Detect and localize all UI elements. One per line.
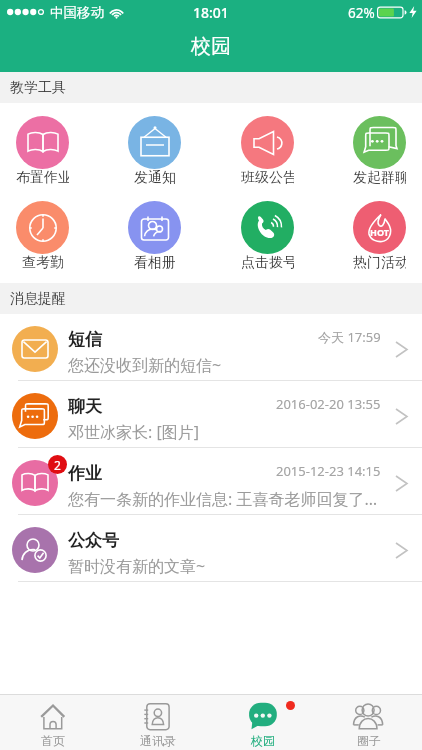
staticText: 您还没收到新的短信~ — [68, 354, 380, 376]
button[interactable]: 圈子 — [316, 695, 422, 750]
staticText: 邓世冰家长: [图片] — [68, 421, 380, 443]
staticText: 圈子 — [357, 733, 381, 748]
staticText: 作业 — [68, 463, 102, 484]
staticText: 看相册 — [134, 254, 176, 272]
staticText: 热门活动 — [353, 254, 406, 272]
button[interactable]: 点击拨号 — [241, 201, 294, 272]
button[interactable]: 校园 — [210, 695, 316, 750]
button[interactable]: 首页 — [0, 695, 105, 750]
staticText: 短信 — [68, 329, 102, 350]
button[interactable]: 发起群聊 — [353, 116, 406, 187]
button[interactable]: 查考勤 — [16, 201, 69, 272]
staticText: 2 — [54, 457, 61, 473]
button[interactable]: 聊天 — [0, 381, 422, 448]
staticText: 2015-12-23 14:15 — [276, 462, 381, 480]
staticText: 首页 — [41, 733, 65, 748]
staticText: 发通知 — [134, 169, 176, 187]
button[interactable]: 短信 — [0, 314, 422, 381]
button[interactable]: 布置作业 — [16, 116, 69, 187]
staticText: 62% — [348, 4, 375, 22]
staticText: 2016-02-20 13:55 — [276, 395, 381, 413]
staticText: 校园 — [251, 733, 275, 748]
staticText: 中国移动 — [50, 4, 104, 21]
button[interactable]: 通讯录 — [105, 695, 210, 750]
staticText: 布置作业 — [16, 169, 69, 187]
staticText: 消息提醒 — [10, 290, 66, 308]
staticText: 今天 17:59 — [318, 328, 381, 346]
staticText: HOT — [370, 226, 389, 238]
button[interactable]: HOT — [353, 201, 406, 272]
staticText: 公众号 — [68, 530, 119, 551]
staticText: 点击拨号 — [241, 254, 294, 272]
staticText: 班级公告 — [241, 169, 294, 187]
button[interactable]: 发通知 — [128, 116, 181, 187]
button[interactable]: 看相册 — [128, 201, 181, 272]
staticText: 您有一条新的作业信息: 王喜奇老师回复了… — [68, 488, 380, 510]
button[interactable]: 公众号 — [0, 515, 422, 582]
staticText: 发起群聊 — [353, 169, 406, 187]
button[interactable]: 班级公告 — [241, 116, 294, 187]
staticText: 暂时没有新的文章~ — [68, 555, 380, 577]
staticText: 查考勤 — [22, 254, 64, 272]
button[interactable]: 2 — [0, 448, 422, 515]
staticText: 校园 — [191, 34, 231, 59]
staticText: 通讯录 — [140, 733, 176, 748]
staticText: 聊天 — [68, 396, 102, 417]
staticText: 18:01 — [193, 3, 229, 22]
staticText: 教学工具 — [10, 79, 66, 97]
